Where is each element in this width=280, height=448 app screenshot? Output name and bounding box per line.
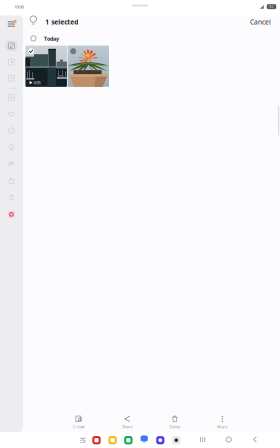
button[interactable]: Keep [90, 434, 102, 446]
button[interactable]: Home [220, 433, 238, 447]
staticText: 0:05 [33, 80, 40, 85]
staticText: Today [44, 35, 59, 42]
button[interactable]: Photo [68, 46, 109, 87]
staticText: All [31, 22, 35, 26]
button[interactable]: Cancel [245, 15, 276, 29]
button[interactable]: Recently added [0, 123, 22, 138]
button[interactable]: Select all [25, 14, 41, 28]
button[interactable]: Share [105, 414, 149, 431]
staticText: Share [122, 424, 132, 429]
button[interactable]: Menu [2, 17, 20, 30]
button[interactable]: Photos [0, 38, 22, 53]
staticText: 82 [269, 5, 273, 8]
button[interactable]: Back [246, 433, 264, 447]
staticText: Create [73, 424, 85, 429]
button[interactable]: Files [107, 434, 119, 446]
staticText: Cancel [250, 18, 271, 26]
button[interactable]: Places [0, 140, 22, 155]
button[interactable]: Video, selected [25, 46, 67, 87]
button[interactable]: Delete [153, 414, 197, 431]
button[interactable]: All apps [76, 434, 89, 447]
button[interactable]: Google Photos [2, 208, 20, 221]
button[interactable]: Albums [0, 54, 22, 69]
button[interactable]: Phone [122, 434, 134, 446]
button[interactable]: Create [57, 414, 101, 431]
button[interactable]: Memories [0, 71, 22, 86]
button[interactable]: Trash [0, 190, 22, 205]
button[interactable]: Messages [138, 434, 150, 446]
button[interactable]: Camera [170, 434, 182, 446]
staticText: Delete [169, 424, 180, 429]
staticText: 10:00 [14, 4, 23, 10]
button[interactable]: More [200, 414, 244, 431]
button[interactable]: Screenshots [0, 90, 22, 105]
staticText: More [217, 424, 227, 429]
button[interactable]: Favorites [0, 106, 22, 121]
button[interactable]: People [0, 156, 22, 171]
button[interactable]: Archive [0, 173, 22, 188]
button[interactable]: Recent apps [194, 433, 212, 447]
staticText: 1 selected [45, 18, 78, 26]
button[interactable]: Select Today [27, 33, 39, 44]
button[interactable]: Browser [154, 434, 166, 446]
